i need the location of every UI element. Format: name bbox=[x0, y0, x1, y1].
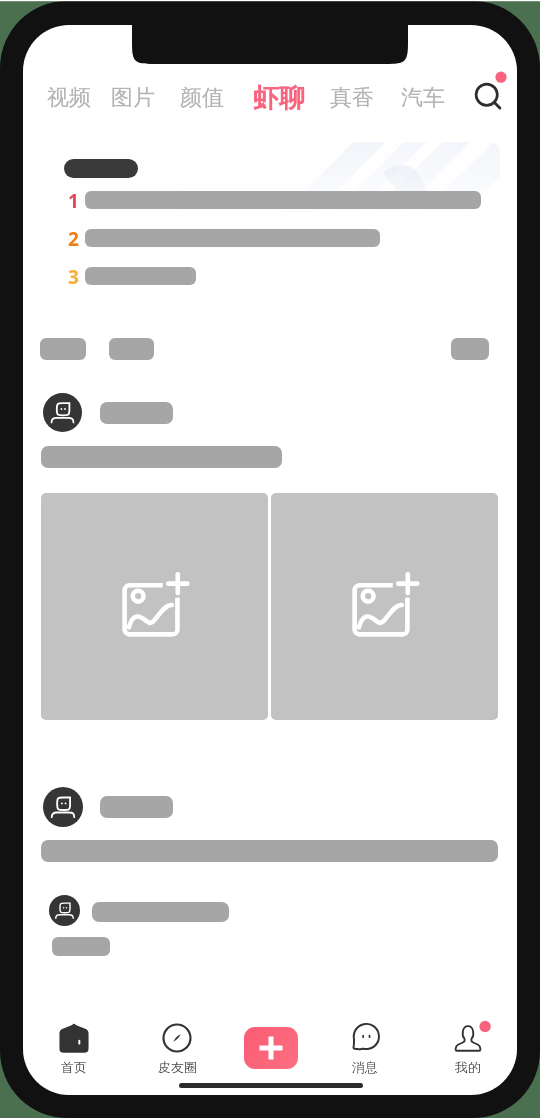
staticText: 2 bbox=[68, 226, 79, 249]
button[interactable]: Add photo bbox=[41, 493, 268, 720]
staticText: 皮友圈 bbox=[158, 1059, 197, 1075]
button[interactable]: 首页 bbox=[40, 1018, 108, 1075]
staticText: 消息 bbox=[352, 1059, 378, 1075]
button[interactable] bbox=[109, 338, 154, 360]
button[interactable] bbox=[40, 338, 86, 360]
button[interactable]: 图片 bbox=[103, 77, 163, 119]
staticText: 颜值 bbox=[180, 84, 224, 112]
staticText: 真香 bbox=[330, 84, 374, 112]
button[interactable]: Search bbox=[461, 61, 517, 117]
button[interactable]: 皮友圈 bbox=[143, 1018, 211, 1075]
button[interactable]: 2 bbox=[60, 224, 480, 251]
button[interactable] bbox=[451, 338, 489, 360]
button[interactable]: 1 bbox=[60, 186, 480, 213]
staticText: 视频 bbox=[47, 84, 91, 112]
button[interactable]: 消息 bbox=[331, 1018, 399, 1075]
button[interactable]: 视频 bbox=[39, 77, 99, 119]
button[interactable]: Add photo bbox=[271, 493, 498, 720]
button[interactable]: Create post bbox=[244, 1027, 298, 1069]
staticText: 汽车 bbox=[401, 84, 445, 112]
staticText: 首页 bbox=[61, 1059, 87, 1075]
staticText: 3 bbox=[68, 264, 79, 287]
button[interactable]: 颜值 bbox=[172, 77, 232, 119]
staticText: 图片 bbox=[111, 84, 155, 112]
staticText: 虾聊 bbox=[253, 82, 305, 115]
button[interactable]: 3 bbox=[60, 262, 480, 289]
staticText: 1 bbox=[68, 188, 79, 211]
button[interactable]: 汽车 bbox=[393, 77, 453, 119]
button[interactable]: 1 bbox=[42, 142, 500, 310]
button[interactable]: 我的 bbox=[434, 1018, 502, 1075]
staticText: 我的 bbox=[455, 1059, 481, 1075]
button[interactable]: 真香 bbox=[322, 77, 382, 119]
button[interactable]: 虾聊 bbox=[247, 74, 311, 122]
